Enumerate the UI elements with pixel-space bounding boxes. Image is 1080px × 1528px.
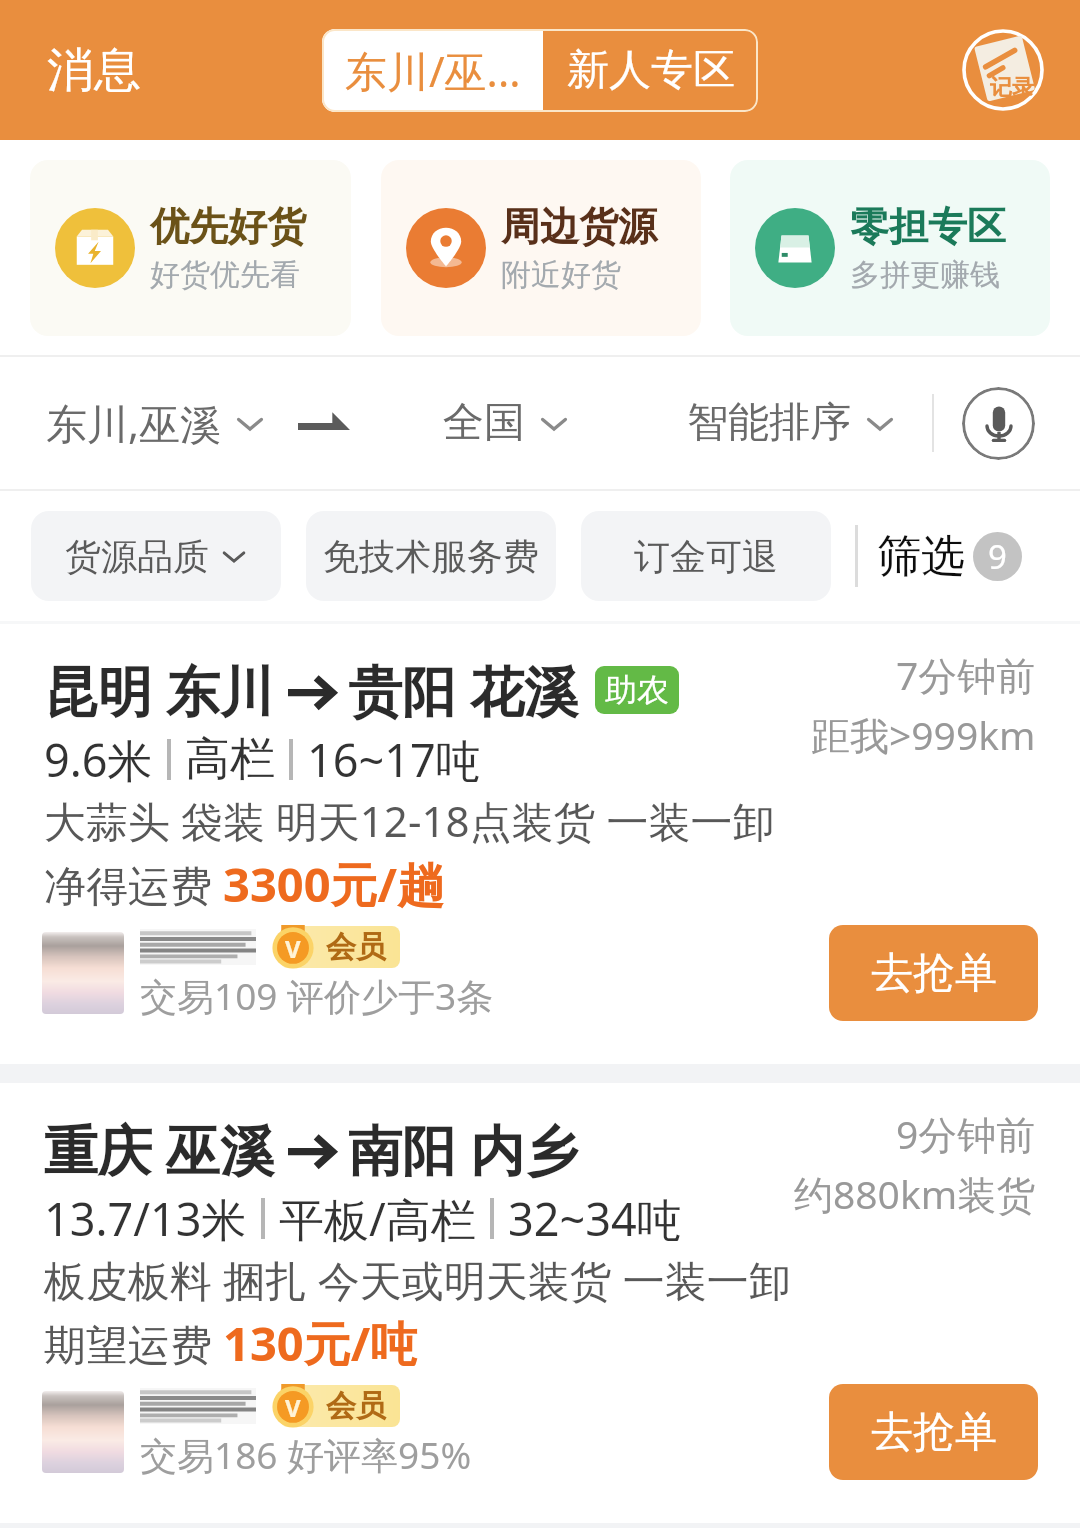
staticText: 零担专区 — [850, 202, 1006, 251]
staticText: 3300元/趟 — [223, 852, 445, 916]
staticText: 优先好货 — [150, 202, 306, 251]
staticText: 昆明 东川 — [44, 653, 275, 727]
staticText: 东川/巫... — [345, 42, 521, 99]
staticText: 智能排序 — [687, 397, 851, 449]
staticText: 32~34吨 — [508, 1188, 682, 1249]
button[interactable]: 9分钟前 — [0, 1083, 1080, 1523]
button[interactable]: 去抢单 — [829, 1384, 1038, 1480]
button[interactable]: 周边货源 — [381, 160, 701, 336]
staticText: 重庆 巫溪 — [44, 1112, 275, 1186]
button[interactable]: 语音搜索 — [962, 387, 1035, 460]
staticText: 货源品质 — [65, 534, 209, 579]
button[interactable]: 订金可退 — [581, 511, 831, 601]
button[interactable]: 货源品质 — [31, 511, 281, 601]
staticText: 全国 — [443, 397, 525, 449]
staticText: 约880km装货 — [794, 1167, 1036, 1220]
staticText: 会员 — [326, 928, 386, 966]
staticText: 记录 — [990, 74, 1034, 102]
staticText: 13.7/13米 — [44, 1188, 247, 1249]
staticText: 9.6米 — [44, 729, 153, 790]
button[interactable]: 筛选 — [873, 521, 1026, 592]
staticText: 去抢单 — [871, 1406, 997, 1459]
button[interactable]: 零担专区 — [730, 160, 1050, 336]
button[interactable]: 免技术服务费 — [306, 511, 556, 601]
button[interactable]: 新人专区 — [543, 29, 758, 112]
staticText: 新人专区 — [567, 44, 735, 97]
staticText: 交易109 评价少于3条 — [140, 970, 494, 1021]
staticText: 距我>999km — [811, 708, 1036, 761]
staticText: 会员 — [326, 1387, 386, 1425]
staticText: 多拼更赚钱 — [850, 256, 1000, 294]
staticText: 高栏 — [185, 731, 275, 788]
staticText: 南阳 内乡 — [348, 1112, 579, 1186]
staticText: 期望运费 — [44, 1315, 223, 1372]
staticText: 订金可退 — [634, 534, 778, 579]
staticText: 周边货源 — [501, 202, 657, 251]
staticText: 交易186 好评率95% — [140, 1429, 472, 1480]
staticText: 9分钟前 — [896, 1107, 1036, 1160]
staticText: V — [285, 1391, 301, 1424]
staticText: 东川,巫溪 — [46, 395, 221, 451]
button[interactable]: 智能排序 — [683, 387, 899, 459]
staticText: 筛选 — [877, 529, 965, 584]
staticText: 9 — [988, 534, 1007, 579]
staticText: 7分钟前 — [896, 648, 1036, 701]
button[interactable]: 东川/巫... — [322, 29, 543, 112]
staticText: 去抢单 — [871, 947, 997, 1000]
button[interactable]: 全国 — [439, 387, 573, 459]
staticText: 130元/吨 — [223, 1311, 418, 1375]
button[interactable]: 记录 — [951, 18, 1055, 122]
staticText: 平板/高栏 — [279, 1188, 476, 1249]
staticText: 16~17吨 — [307, 729, 481, 790]
button[interactable]: 优先好货 — [30, 160, 351, 336]
staticText: V — [285, 932, 301, 965]
staticText: 净得运费 — [44, 856, 223, 913]
button[interactable]: 东川,巫溪 — [0, 385, 273, 461]
staticText: 好货优先看 — [150, 256, 300, 294]
button[interactable]: 7分钟前 — [0, 624, 1080, 1064]
button[interactable]: 去抢单 — [829, 925, 1038, 1021]
button[interactable]: 消息 — [47, 41, 141, 100]
staticText: 免技术服务费 — [323, 534, 539, 579]
staticText: 板皮板料 捆扎 今天或明天装货 一装一卸 — [44, 1251, 791, 1308]
staticText: 贵阳 花溪 — [348, 653, 579, 727]
staticText: 助农 — [605, 670, 669, 710]
staticText: 大蒜头 袋装 明天12-18点装货 一装一卸 — [44, 792, 775, 849]
staticText: 附近好货 — [501, 256, 621, 294]
